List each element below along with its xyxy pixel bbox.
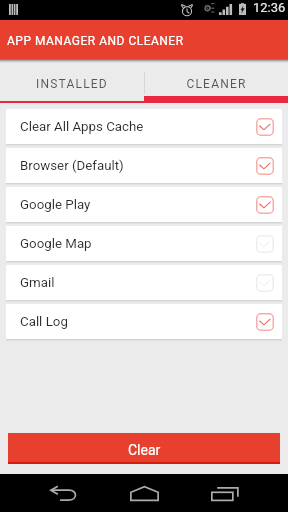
button[interactable]: Clear: [8, 433, 280, 464]
other: Not selected: [256, 274, 274, 292]
other: Selected: [256, 313, 274, 331]
staticText: INSTALLED: [36, 77, 108, 91]
other: Selected: [256, 196, 274, 214]
staticText: Browser (Default): [20, 158, 256, 174]
button[interactable]: Home: [116, 474, 172, 512]
other: Selected: [256, 118, 274, 136]
button[interactable]: Gmail: [6, 265, 282, 300]
button[interactable]: Google Play: [6, 187, 282, 222]
button[interactable]: Call Log: [6, 304, 282, 339]
staticText: Google Map: [20, 236, 256, 252]
button[interactable]: Back: [36, 474, 92, 512]
other: Not selected: [256, 235, 274, 253]
staticText: Google Play: [20, 197, 256, 213]
staticText: APP MANAGER AND CLEANER: [7, 34, 184, 48]
button[interactable]: Clear All Apps Cache: [6, 109, 282, 144]
staticText: 12:36: [253, 0, 286, 15]
button[interactable]: Google Map: [6, 226, 282, 261]
other: Selected: [256, 157, 274, 175]
button[interactable]: Recent apps: [197, 474, 253, 512]
staticText: Clear: [128, 442, 161, 458]
staticText: Gmail: [20, 275, 256, 291]
button[interactable]: INSTALLED: [0, 63, 144, 103]
staticText: CLEANER: [186, 77, 247, 91]
staticText: Clear All Apps Cache: [20, 119, 256, 135]
button[interactable]: CLEANER: [144, 63, 288, 103]
staticText: Call Log: [20, 314, 256, 330]
button[interactable]: Browser (Default): [6, 148, 282, 183]
